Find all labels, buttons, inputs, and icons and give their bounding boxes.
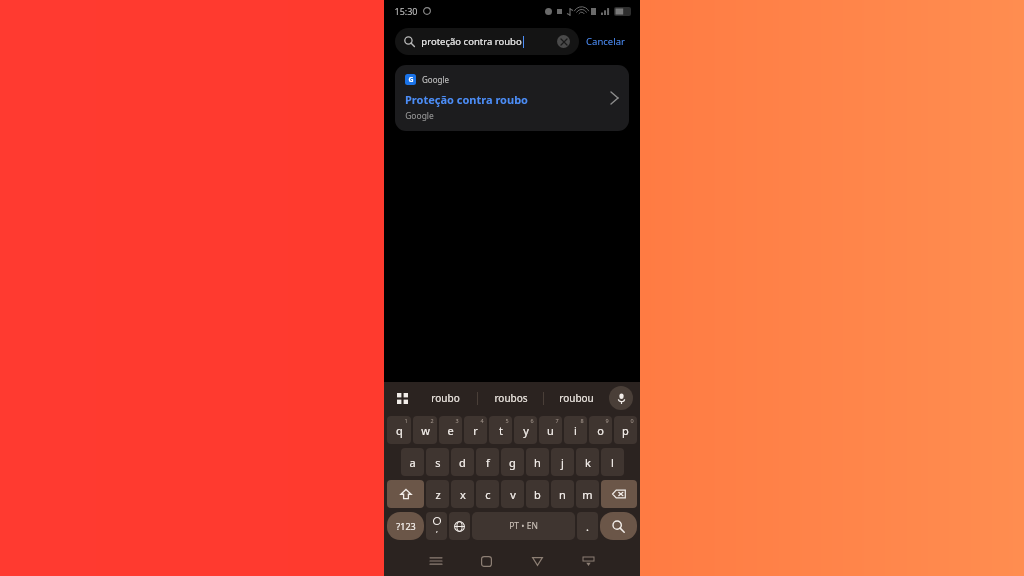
staticText: b — [534, 487, 541, 502]
button[interactable]: Hide keyboard — [563, 546, 614, 576]
staticText: 5 — [505, 417, 509, 424]
button[interactable]: Backspace — [601, 480, 637, 508]
button[interactable]: Shift — [387, 480, 424, 508]
staticText: . — [586, 519, 589, 534]
button[interactable]: h — [526, 448, 549, 476]
other: Open result — [610, 91, 619, 105]
staticText: G — [408, 75, 414, 85]
staticText: p — [622, 423, 629, 438]
button[interactable]: u — [539, 416, 562, 444]
button[interactable]: ?123 — [387, 512, 424, 540]
button[interactable]: Voice input — [609, 386, 633, 410]
staticText: w — [421, 423, 430, 438]
staticText: a — [409, 455, 416, 470]
staticText: n — [559, 487, 566, 502]
staticText: o — [597, 423, 604, 438]
staticText: Proteção contra roubo — [405, 92, 528, 107]
button[interactable]: roubos — [478, 382, 543, 414]
button[interactable]: Emoji — [426, 512, 447, 540]
staticText: 6 — [530, 417, 534, 424]
button[interactable]: Change language — [449, 512, 470, 540]
button[interactable]: q — [387, 416, 411, 444]
staticText: 15:30 — [394, 5, 418, 17]
staticText: 9 — [605, 417, 609, 424]
staticText: q — [396, 423, 403, 438]
button[interactable]: n — [551, 480, 574, 508]
staticText: roubos — [494, 391, 528, 405]
button[interactable]: k — [576, 448, 599, 476]
button[interactable]: Search — [600, 512, 637, 540]
staticText: , — [436, 525, 438, 535]
button[interactable]: v — [501, 480, 524, 508]
button[interactable]: Cancelar — [579, 31, 632, 52]
staticText: ?123 — [396, 520, 416, 532]
button[interactable]: Home — [461, 546, 512, 576]
staticText: e — [447, 423, 454, 438]
staticText: 0 — [630, 417, 634, 424]
staticText: 1 — [404, 417, 408, 424]
staticText: r — [473, 423, 478, 438]
staticText: u — [547, 423, 554, 438]
staticText: i — [574, 423, 577, 438]
button[interactable]: o — [589, 416, 612, 444]
button[interactable]: l — [601, 448, 624, 476]
staticText: Google — [405, 110, 434, 122]
button[interactable]: s — [426, 448, 449, 476]
staticText: j — [561, 455, 564, 470]
staticText: PT • EN — [509, 520, 538, 532]
staticText: f — [486, 455, 490, 470]
button[interactable]: c — [476, 480, 499, 508]
button[interactable]: b — [526, 480, 549, 508]
staticText: 2 — [430, 417, 434, 424]
button[interactable]: x — [451, 480, 474, 508]
button[interactable]: y — [514, 416, 537, 444]
button[interactable]: proteção contra roubo — [395, 28, 579, 55]
button[interactable]: e — [439, 416, 462, 444]
staticText: v — [510, 487, 516, 502]
button[interactable]: r — [464, 416, 487, 444]
button[interactable]: g — [501, 448, 524, 476]
staticText: roubo — [431, 391, 460, 405]
staticText: 3 — [455, 417, 459, 424]
staticText: y — [523, 423, 529, 438]
staticText: 4 — [480, 417, 484, 424]
button[interactable]: t — [489, 416, 512, 444]
button[interactable]: m — [576, 480, 599, 508]
staticText: 8 — [580, 417, 584, 424]
button[interactable]: roubo — [413, 382, 477, 414]
button[interactable]: Clipboard — [391, 387, 413, 409]
button[interactable]: p — [614, 416, 637, 444]
button[interactable]: i — [564, 416, 587, 444]
staticText: t — [499, 423, 503, 438]
button[interactable]: a — [401, 448, 424, 476]
staticText: x — [460, 487, 466, 502]
button[interactable]: PT • EN — [472, 512, 575, 540]
staticText: c — [485, 487, 491, 502]
staticText: d — [459, 455, 466, 470]
staticText: 7 — [555, 417, 559, 424]
staticText: proteção contra roubo — [421, 35, 522, 48]
button[interactable]: f — [476, 448, 499, 476]
staticText: h — [534, 455, 541, 470]
staticText: roubou — [559, 391, 594, 405]
button[interactable]: z — [426, 480, 449, 508]
button[interactable]: j — [551, 448, 574, 476]
staticText: Google — [422, 74, 449, 85]
staticText: Cancelar — [586, 35, 625, 48]
button[interactable]: d — [451, 448, 474, 476]
staticText: z — [435, 487, 441, 502]
button[interactable]: roubou — [544, 382, 609, 414]
staticText: l — [611, 455, 614, 470]
button[interactable]: w — [413, 416, 437, 444]
staticText: g — [509, 455, 516, 470]
button[interactable]: Recents — [410, 546, 461, 576]
button[interactable]: Back — [512, 546, 563, 576]
staticText: s — [435, 455, 441, 470]
button[interactable]: . — [577, 512, 598, 540]
staticText: m — [582, 487, 593, 502]
staticText: k — [585, 455, 591, 470]
button[interactable]: Clear search — [557, 35, 570, 48]
button[interactable]: G — [395, 65, 629, 131]
